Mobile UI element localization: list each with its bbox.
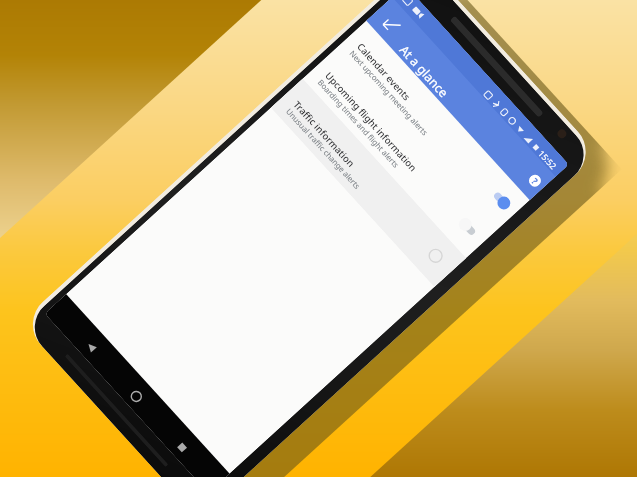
button[interactable]: Traffic information [271,78,466,287]
button[interactable]: On [487,186,513,212]
button[interactable]: Upcoming flight information [303,50,498,258]
staticText: Calendar events [354,40,414,104]
button[interactable]: Navigate up [372,5,411,44]
staticText: Unusual traffic change alerts [283,106,363,192]
button[interactable]: Off [424,244,450,270]
staticText: Next upcoming meeting alerts [347,48,430,139]
staticText: ? [529,175,541,187]
button[interactable]: Back [74,330,108,364]
staticText: At a glance [396,42,452,101]
button[interactable]: Help [526,172,543,189]
button[interactable]: Calendar events [334,21,530,229]
button[interactable]: Off [456,215,482,241]
staticText: Traffic information [291,98,357,170]
staticText: 15:52 [535,148,559,172]
staticText: Upcoming flight information [322,69,420,174]
button[interactable]: Home [119,379,153,413]
staticText: Boarding times and flight alerts [315,77,401,171]
button[interactable]: Recent apps [165,430,199,464]
